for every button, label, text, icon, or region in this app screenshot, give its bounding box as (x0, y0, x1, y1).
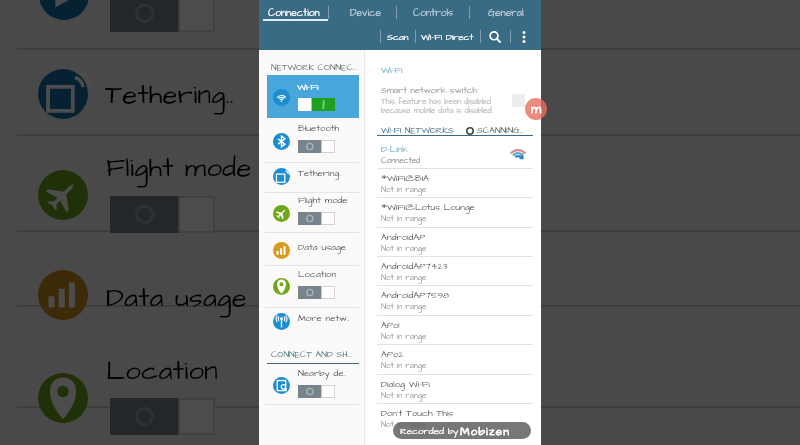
button[interactable] (298, 385, 335, 398)
staticText: Bluetooth (298, 122, 340, 135)
staticText: Connection (268, 6, 320, 20)
button[interactable]: General (482, 0, 530, 26)
staticText: This feature has been disabled (381, 96, 492, 107)
staticText: Wi-Fi (297, 81, 319, 94)
staticText: APo1 (381, 319, 400, 332)
button[interactable]: Mobizen (525, 98, 547, 120)
button[interactable] (365, 374, 541, 403)
staticText: Recorded by (400, 425, 459, 438)
button[interactable]: Device (342, 0, 388, 26)
staticText: General (488, 6, 524, 20)
staticText: CONNECT AND SH... (271, 348, 352, 361)
button[interactable] (298, 98, 335, 111)
staticText: Don't Touch This (381, 407, 454, 420)
button[interactable] (298, 212, 335, 225)
staticText: Wi-Fi Direct (421, 31, 474, 44)
staticText: Flight mode (106, 149, 252, 187)
staticText: Flight mode (298, 194, 348, 207)
staticText: #WiFi@BIA (381, 172, 430, 185)
button[interactable] (259, 369, 365, 403)
staticText: NETWORK CONNEC... (271, 61, 357, 74)
staticText: AndroidAP7423 (381, 260, 448, 273)
staticText: Location (298, 268, 337, 281)
button[interactable] (365, 256, 541, 285)
button[interactable] (259, 233, 365, 267)
staticText: Not in range (381, 419, 427, 430)
staticText: APo2 (381, 348, 404, 361)
button[interactable] (365, 227, 541, 256)
staticText: Not in range (381, 184, 427, 195)
staticText: Not in range (381, 331, 427, 342)
button[interactable] (365, 344, 541, 373)
staticText: Not in range (381, 360, 427, 371)
button[interactable] (259, 304, 365, 338)
staticText: D-Link (381, 143, 408, 156)
staticText: SCANNING... (477, 124, 524, 137)
staticText: Not in range (381, 301, 427, 312)
staticText: Controls (413, 6, 454, 20)
staticText: Not in range (381, 243, 427, 254)
button[interactable] (365, 197, 541, 226)
staticText: Not in range (381, 213, 427, 224)
staticText: Dialog Wi-Fi (381, 378, 430, 391)
staticText: AndroidAP (381, 231, 426, 244)
button[interactable] (365, 403, 541, 432)
button[interactable] (365, 315, 541, 344)
button[interactable]: Search (483, 26, 507, 48)
staticText: Device (350, 6, 381, 20)
staticText: Not in range (381, 272, 427, 283)
button[interactable]: Connection (264, 0, 324, 26)
button[interactable]: Scan (383, 26, 412, 48)
button[interactable]: More options (513, 26, 535, 48)
staticText: Mobizen (460, 424, 511, 440)
staticText: Scan (387, 31, 409, 44)
staticText: More netw.. (298, 312, 350, 325)
staticText: because mobile data is disabled. (381, 105, 493, 116)
staticText: AndroidAP7598 (381, 289, 450, 302)
button[interactable] (365, 285, 541, 314)
staticText: Data usage (298, 241, 346, 254)
button[interactable] (259, 159, 365, 193)
button[interactable] (259, 125, 365, 159)
staticText: Data usage (106, 279, 247, 317)
button[interactable] (365, 136, 541, 168)
button[interactable] (298, 286, 335, 299)
staticText: Location (106, 352, 219, 390)
staticText: Smart network switch (381, 84, 477, 97)
staticText: Not in range (381, 390, 427, 401)
staticText: m (531, 100, 542, 118)
button[interactable] (259, 269, 365, 303)
staticText: Wi-Fi (381, 64, 403, 77)
staticText: Tethering.. (298, 167, 342, 180)
button[interactable]: Wi-Fi Direct (417, 26, 477, 48)
button[interactable] (267, 75, 359, 118)
staticText: WI-FI NETWORKS (381, 124, 454, 137)
button[interactable]: Controls (408, 0, 458, 26)
button[interactable] (365, 168, 541, 197)
button[interactable] (298, 140, 335, 153)
staticText: #WiFi@Lotus Lounge (381, 201, 475, 214)
button[interactable] (259, 196, 365, 230)
staticText: Nearby de.. (298, 367, 347, 380)
staticText: Connected (381, 155, 421, 166)
staticText: Tethering.. (105, 76, 234, 114)
